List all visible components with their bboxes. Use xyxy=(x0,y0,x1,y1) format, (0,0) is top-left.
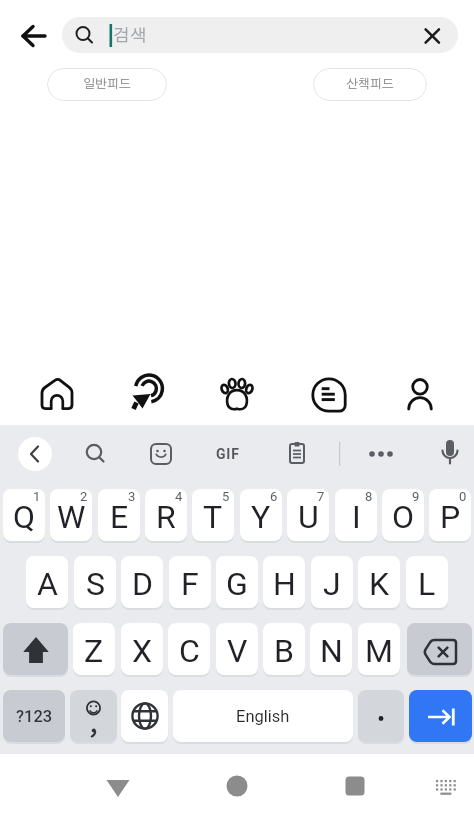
staticText: C xyxy=(179,632,200,670)
button[interactable] xyxy=(297,366,359,422)
button[interactable]: L xyxy=(406,556,448,608)
button[interactable]: Y xyxy=(240,489,282,541)
button[interactable]: English xyxy=(173,690,353,742)
button[interactable] xyxy=(389,366,451,422)
staticText: E xyxy=(110,498,129,536)
staticText: N xyxy=(320,632,343,670)
button[interactable]: G xyxy=(216,556,258,608)
button[interactable] xyxy=(424,764,468,808)
button[interactable]: J xyxy=(311,556,353,608)
button[interactable]: W xyxy=(50,489,92,541)
button[interactable]: Z xyxy=(73,623,115,675)
button[interactable]: A xyxy=(26,556,68,608)
button[interactable] xyxy=(18,437,52,471)
button[interactable]: K xyxy=(358,556,400,608)
staticText: I xyxy=(352,498,361,536)
button[interactable]: 검색 xyxy=(62,17,458,53)
button[interactable]: O xyxy=(382,489,424,541)
staticText: X xyxy=(132,632,153,670)
staticText: K xyxy=(369,565,390,603)
button[interactable]: H xyxy=(263,556,305,608)
button[interactable]: S xyxy=(74,556,116,608)
button[interactable]: R xyxy=(145,489,187,541)
staticText: 2 xyxy=(80,489,88,504)
button[interactable]: Q xyxy=(3,489,45,541)
button[interactable] xyxy=(70,690,117,742)
button[interactable] xyxy=(112,366,174,422)
staticText: 3 xyxy=(128,489,136,504)
staticText: Y xyxy=(251,498,271,536)
staticText: S xyxy=(86,565,105,603)
button[interactable]: 산책피드 xyxy=(313,68,427,101)
button[interactable] xyxy=(94,762,142,810)
staticText: L xyxy=(418,565,436,603)
staticText: P xyxy=(440,498,461,536)
button[interactable]: P xyxy=(429,489,471,541)
button[interactable] xyxy=(213,762,261,810)
staticText: 6 xyxy=(270,489,278,504)
staticText: ?123 xyxy=(16,707,53,726)
staticText: English xyxy=(236,707,290,726)
staticText: J xyxy=(323,565,341,603)
staticText: 8 xyxy=(365,489,373,504)
button[interactable] xyxy=(331,762,379,810)
staticText: 일반피드 xyxy=(83,78,132,91)
button[interactable]: I xyxy=(335,489,377,541)
staticText: H xyxy=(273,565,296,603)
staticText: 4 xyxy=(175,489,183,504)
staticText: A xyxy=(37,565,58,603)
button[interactable]: N xyxy=(310,623,352,675)
staticText: 0 xyxy=(459,489,467,504)
button[interactable]: C xyxy=(168,623,210,675)
button[interactable] xyxy=(407,623,472,675)
button[interactable] xyxy=(409,690,472,742)
button[interactable]: T xyxy=(192,489,234,541)
staticText: U xyxy=(298,498,319,536)
staticText: F xyxy=(181,565,199,603)
staticText: W xyxy=(57,498,86,536)
button[interactable]: V xyxy=(216,623,258,675)
button[interactable] xyxy=(121,690,168,742)
button[interactable] xyxy=(16,18,52,54)
button[interactable]: X xyxy=(121,623,163,675)
staticText: T xyxy=(203,498,223,536)
button[interactable] xyxy=(3,623,68,675)
staticText: G xyxy=(226,565,248,603)
button[interactable]: B xyxy=(263,623,305,675)
staticText: D xyxy=(132,565,153,603)
button[interactable]: M xyxy=(358,623,400,675)
staticText: V xyxy=(227,632,248,670)
button[interactable]: D xyxy=(121,556,163,608)
staticText: GIF xyxy=(216,446,240,462)
button[interactable]: GIF xyxy=(206,437,250,471)
button[interactable] xyxy=(206,366,268,422)
staticText: 5 xyxy=(222,489,230,504)
staticText: Q xyxy=(13,498,36,536)
button[interactable]: F xyxy=(169,556,211,608)
button[interactable] xyxy=(26,366,88,422)
staticText: 산책피드 xyxy=(346,78,395,91)
staticText: 7 xyxy=(317,489,325,504)
staticText: O xyxy=(392,498,415,536)
staticText: B xyxy=(274,632,294,670)
button[interactable] xyxy=(358,690,404,742)
staticText: M xyxy=(365,632,393,670)
button[interactable]: ?123 xyxy=(3,690,65,742)
staticText: 1 xyxy=(33,489,41,504)
button[interactable]: U xyxy=(287,489,329,541)
staticText: R xyxy=(156,498,176,536)
staticText: Z xyxy=(84,632,104,670)
button[interactable]: E xyxy=(98,489,140,541)
staticText: 9 xyxy=(412,489,420,504)
staticText: 검색 xyxy=(113,27,149,44)
button[interactable]: 일반피드 xyxy=(47,68,167,101)
